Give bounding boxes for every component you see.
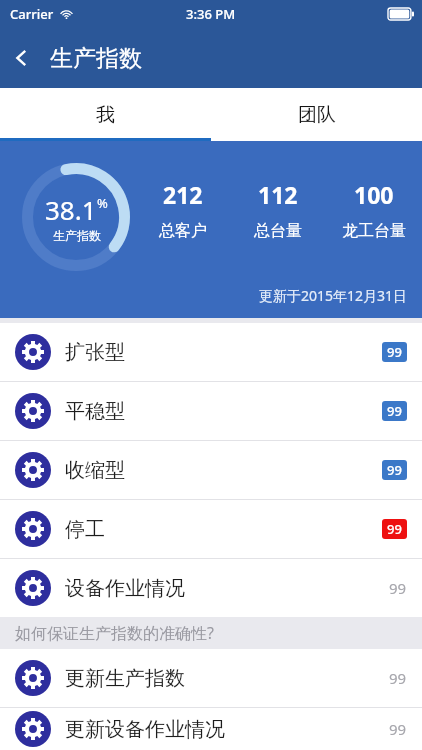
staticText: 99 <box>387 343 402 361</box>
button[interactable]: 更新设备作业情况 <box>0 708 422 750</box>
staticText: 生产指数 <box>53 228 101 243</box>
staticText: 停工 <box>65 517 105 542</box>
button[interactable]: 我 <box>0 88 211 141</box>
button[interactable]: 更新生产指数 <box>0 649 422 707</box>
staticText: 100 <box>354 179 394 210</box>
staticText: 收缩型 <box>65 458 125 483</box>
staticText: 更新于2015年12月31日 <box>259 286 408 305</box>
staticText: 99 <box>389 719 407 739</box>
staticText: 3:36 PM <box>186 5 236 23</box>
staticText: 99 <box>389 578 407 598</box>
button[interactable]: 平稳型 <box>0 382 422 440</box>
button[interactable]: 团队 <box>211 88 422 141</box>
staticText: 生产指数 <box>50 44 142 73</box>
staticText: 总客户 <box>159 221 207 241</box>
staticText: 更新生产指数 <box>65 666 185 691</box>
staticText: 212 <box>163 179 203 210</box>
staticText: 更新设备作业情况 <box>65 717 225 742</box>
staticText: 平稳型 <box>65 399 125 424</box>
staticText: 99 <box>387 520 402 538</box>
button[interactable]: 扩张型 <box>0 323 422 381</box>
staticText: 99 <box>387 461 402 479</box>
staticText: 设备作业情况 <box>65 576 185 601</box>
button[interactable]: Back <box>0 36 44 80</box>
staticText: 总台量 <box>254 221 302 241</box>
button[interactable]: 停工 <box>0 500 422 558</box>
staticText: 龙工台量 <box>342 221 406 241</box>
staticText: 如何保证生产指数的准确性? <box>15 622 214 644</box>
button[interactable]: 收缩型 <box>0 441 422 499</box>
staticText: 99 <box>387 402 402 420</box>
staticText: 38.1 <box>45 192 97 227</box>
staticText: 团队 <box>298 103 336 127</box>
staticText: 112 <box>258 179 298 210</box>
staticText: Carrier <box>10 5 54 23</box>
staticText: 扩张型 <box>65 340 125 365</box>
staticText: % <box>97 194 108 212</box>
button[interactable]: 设备作业情况 <box>0 559 422 617</box>
staticText: 我 <box>96 103 115 127</box>
staticText: 99 <box>389 668 407 688</box>
